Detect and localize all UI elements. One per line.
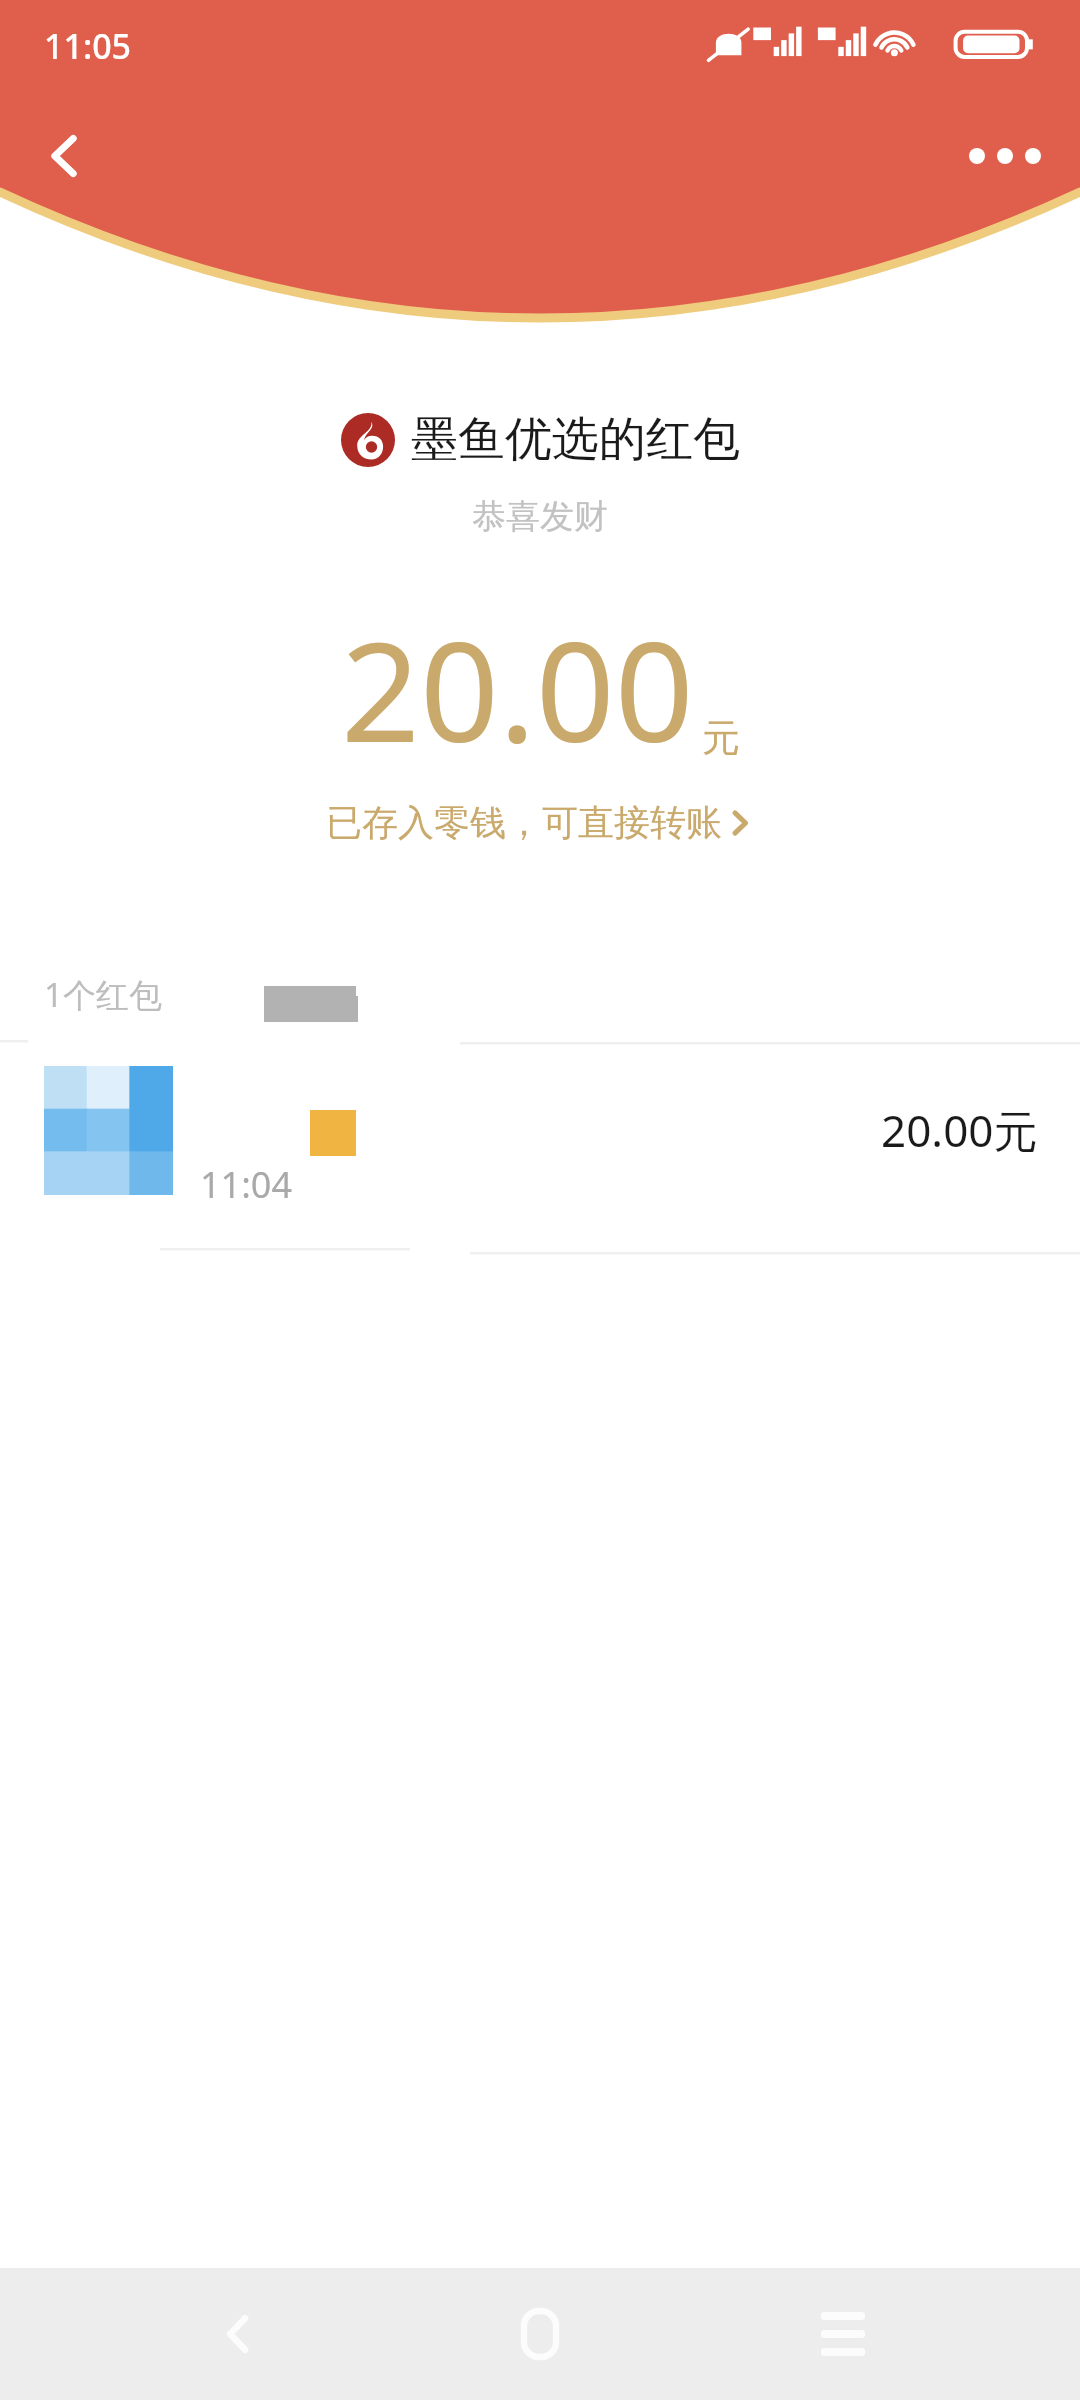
staticText: 墨鱼优选的红包 — [411, 410, 740, 469]
staticText: 元 — [702, 714, 740, 762]
button[interactable]: More options — [950, 106, 1060, 206]
staticText: 20.00元 — [881, 1100, 1038, 1160]
staticText: 恭喜发财 — [0, 495, 1080, 538]
button[interactable]: 墨鱼优选的红包 — [0, 410, 1080, 469]
button[interactable]: Back — [14, 106, 114, 206]
staticText: 已存入零钱，可直接转账 — [326, 800, 722, 845]
staticText: 20.00 — [341, 594, 694, 782]
staticText: 11:05 — [44, 23, 132, 69]
staticText: 11:04 — [200, 1160, 293, 1209]
staticText: 1个红包 — [44, 972, 162, 1017]
button[interactable]: 已存入零钱，可直接转账 — [0, 800, 1080, 845]
button[interactable]: Home — [475, 2269, 605, 2399]
button[interactable]: Recent apps — [778, 2269, 908, 2399]
